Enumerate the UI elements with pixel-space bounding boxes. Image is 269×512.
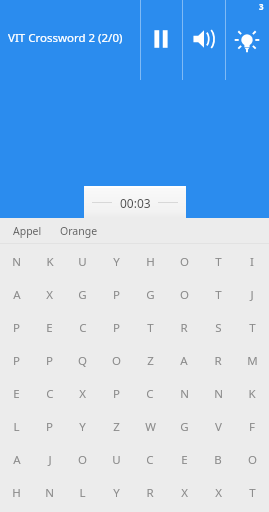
- button[interactable]: Y: [66, 410, 99, 443]
- staticText: VIT Crossword 2 (2/0): [8, 30, 123, 46]
- button[interactable]: N: [167, 377, 201, 410]
- button[interactable]: U: [99, 443, 133, 476]
- button[interactable]: Appel: [11, 220, 44, 242]
- button[interactable]: P: [33, 344, 66, 377]
- button[interactable]: Y: [99, 245, 133, 278]
- staticText: B: [214, 452, 222, 468]
- button[interactable]: R: [133, 476, 167, 509]
- button[interactable]: L: [66, 476, 99, 509]
- button[interactable]: T: [235, 476, 269, 509]
- staticText: G: [180, 419, 189, 435]
- staticText: X: [215, 485, 222, 501]
- staticText: P: [13, 353, 20, 369]
- button[interactable]: W: [133, 410, 167, 443]
- button[interactable]: E: [33, 311, 66, 344]
- staticText: P: [113, 386, 120, 402]
- staticText: E: [181, 452, 188, 468]
- button[interactable]: Z: [99, 410, 133, 443]
- button[interactable]: I: [235, 245, 269, 278]
- button[interactable]: M: [235, 344, 269, 377]
- button[interactable]: C: [133, 443, 167, 476]
- button[interactable]: O: [167, 278, 201, 311]
- button[interactable]: J: [33, 443, 66, 476]
- staticText: C: [79, 320, 87, 336]
- staticText: Y: [113, 254, 120, 270]
- staticText: U: [112, 452, 121, 468]
- button[interactable]: 00:03: [84, 186, 186, 228]
- button[interactable]: N: [0, 245, 33, 278]
- button[interactable]: C: [133, 377, 167, 410]
- button[interactable]: S: [201, 311, 235, 344]
- staticText: S: [215, 320, 222, 336]
- staticText: F: [249, 419, 255, 435]
- staticText: P: [46, 419, 53, 435]
- staticText: K: [46, 254, 54, 270]
- button[interactable]: A: [167, 344, 201, 377]
- button[interactable]: O: [66, 443, 99, 476]
- button[interactable]: O: [99, 344, 133, 377]
- button[interactable]: T: [201, 278, 235, 311]
- button[interactable]: X: [33, 278, 66, 311]
- button[interactable]: A: [0, 443, 33, 476]
- button[interactable]: P: [99, 377, 133, 410]
- button[interactable]: Y: [99, 476, 133, 509]
- button[interactable]: C: [66, 311, 99, 344]
- button[interactable]: G: [66, 278, 99, 311]
- staticText: P: [113, 320, 120, 336]
- button[interactable]: F: [235, 410, 269, 443]
- button[interactable]: P: [0, 311, 33, 344]
- staticText: O: [180, 287, 189, 303]
- button[interactable]: P: [99, 278, 133, 311]
- staticText: 00:03: [120, 195, 151, 211]
- button[interactable]: E: [167, 443, 201, 476]
- button[interactable]: K: [33, 245, 66, 278]
- staticText: U: [78, 254, 87, 270]
- staticText: T: [249, 485, 256, 501]
- staticText: Q: [78, 353, 87, 369]
- button[interactable]: Hint: [225, 0, 269, 80]
- button[interactable]: X: [201, 476, 235, 509]
- button[interactable]: T: [235, 311, 269, 344]
- button[interactable]: J: [235, 278, 269, 311]
- button[interactable]: R: [201, 344, 235, 377]
- button[interactable]: Orange: [58, 220, 100, 242]
- button[interactable]: K: [235, 377, 269, 410]
- button[interactable]: L: [0, 410, 33, 443]
- button[interactable]: Z: [133, 344, 167, 377]
- button[interactable]: Q: [66, 344, 99, 377]
- button[interactable]: H: [0, 476, 33, 509]
- button[interactable]: O: [235, 443, 269, 476]
- staticText: G: [78, 287, 87, 303]
- button[interactable]: G: [167, 410, 201, 443]
- staticText: P: [13, 320, 20, 336]
- button[interactable]: Sound: [182, 0, 225, 80]
- staticText: N: [214, 386, 223, 402]
- staticText: M: [247, 353, 258, 369]
- staticText: Z: [147, 353, 154, 369]
- staticText: Z: [113, 419, 120, 435]
- button[interactable]: B: [201, 443, 235, 476]
- button[interactable]: T: [133, 311, 167, 344]
- button[interactable]: Pause: [140, 0, 182, 80]
- button[interactable]: U: [66, 245, 99, 278]
- button[interactable]: P: [33, 410, 66, 443]
- button[interactable]: N: [201, 377, 235, 410]
- button[interactable]: P: [0, 344, 33, 377]
- staticText: T: [215, 287, 222, 303]
- button[interactable]: C: [33, 377, 66, 410]
- staticText: O: [78, 452, 87, 468]
- button[interactable]: X: [167, 476, 201, 509]
- button[interactable]: G: [133, 278, 167, 311]
- button[interactable]: T: [201, 245, 235, 278]
- staticText: T: [147, 320, 154, 336]
- button[interactable]: O: [167, 245, 201, 278]
- staticText: C: [46, 386, 54, 402]
- button[interactable]: R: [167, 311, 201, 344]
- button[interactable]: A: [0, 278, 33, 311]
- button[interactable]: N: [33, 476, 66, 509]
- button[interactable]: E: [0, 377, 33, 410]
- button[interactable]: V: [201, 410, 235, 443]
- button[interactable]: H: [133, 245, 167, 278]
- button[interactable]: X: [66, 377, 99, 410]
- button[interactable]: P: [99, 311, 133, 344]
